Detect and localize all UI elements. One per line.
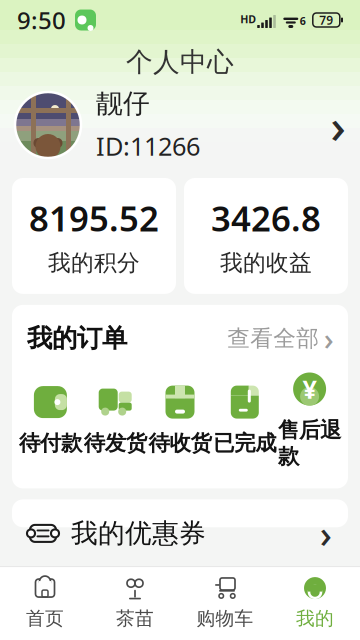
staticText: 茶苗 [116,607,154,630]
staticText: 我的收益 [220,249,312,277]
button[interactable]: 8195.52 [12,178,176,294]
staticText: ★ [32,588,54,615]
staticText: 9:50 [17,4,66,36]
button[interactable]: 首页 [0,575,90,630]
staticText: 我的优惠券 [71,517,206,550]
staticText: ID:11266 [96,129,200,163]
staticText: 查看全部 [227,324,319,352]
staticText: 已完成 [213,430,276,456]
staticText: HD [240,12,256,26]
button[interactable]: 待收货 [148,384,212,456]
button[interactable]: 我的 [270,575,360,630]
staticText: › [330,93,346,157]
staticText: 个人中心 [126,46,234,78]
button[interactable]: 靓仔 [0,84,360,166]
staticText: 我的 [296,607,334,630]
button[interactable]: ¥ [277,371,342,469]
button[interactable]: ★ [12,567,348,635]
staticText: › [320,509,332,558]
staticText: 我的积分 [48,249,140,277]
button[interactable]: 待付款 [18,384,83,456]
button[interactable]: 茶苗 [90,575,180,630]
staticText: 待发货 [84,430,147,456]
staticText: 购物车 [196,607,253,630]
button[interactable]: 购物车 [180,575,270,630]
staticText: 79 [319,12,333,28]
staticText: 售后退款 [278,417,341,469]
staticText: › [320,577,332,626]
staticText: 待付款 [19,430,82,456]
staticText: 首页 [26,607,64,630]
button[interactable]: 我的优惠券 [12,499,348,567]
staticText: 6 [300,14,306,28]
button[interactable]: 查看全部 [227,324,333,352]
staticText: 3426.8 [211,195,321,241]
staticText: ★ [27,582,58,621]
staticText: ★ [27,582,58,621]
staticText: 待收货 [148,430,211,456]
button[interactable]: 待发货 [83,384,148,456]
button[interactable]: 已完成 [212,384,277,456]
staticText: 我的订单 [27,323,127,354]
button[interactable]: 3426.8 [184,178,348,294]
staticText: 8195.52 [29,195,159,241]
staticText: 我的收藏 [71,585,179,618]
staticText: › [324,318,334,359]
staticText: 靓仔 [96,87,150,120]
staticText: ¥ [303,372,317,406]
